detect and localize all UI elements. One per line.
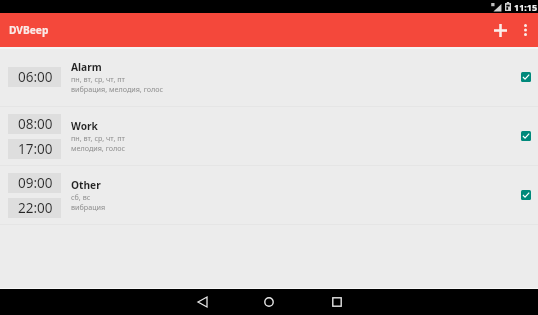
staticText: Work [71, 119, 98, 133]
button[interactable]: Toggle alarm [514, 116, 538, 156]
button[interactable]: 06:00 [0, 47, 538, 106]
staticText: DVBeep [9, 23, 49, 37]
button[interactable]: Home [248, 289, 290, 315]
button[interactable]: Toggle alarm [514, 175, 538, 215]
staticText: 22:00 [18, 199, 53, 217]
staticText: сб, вс [71, 192, 91, 202]
button[interactable]: 09:00 [0, 166, 538, 224]
button[interactable]: More options [513, 13, 538, 47]
staticText: вибрация, мелодия, голос [71, 84, 164, 94]
button[interactable]: Toggle alarm [514, 57, 538, 97]
staticText: 17:00 [18, 140, 53, 158]
staticText: 09:00 [18, 174, 53, 192]
staticText: 11:15 [514, 1, 538, 13]
button[interactable]: 08:00 [0, 107, 538, 165]
staticText: вибрация [71, 202, 106, 212]
staticText: мелодия, голос [71, 143, 126, 153]
button[interactable]: Add alarm [487, 13, 513, 47]
button[interactable]: Back [181, 289, 223, 315]
button[interactable]: Recent apps [316, 289, 358, 315]
staticText: Alarm [71, 60, 102, 74]
staticText: пн, вт, ср, чт, пт [71, 74, 125, 84]
staticText: 08:00 [18, 115, 53, 133]
staticText: пн, вт, ср, чт, пт [71, 133, 125, 143]
staticText: Other [71, 178, 101, 192]
button[interactable]: DVBeep [0, 13, 58, 47]
staticText: 06:00 [18, 68, 53, 86]
